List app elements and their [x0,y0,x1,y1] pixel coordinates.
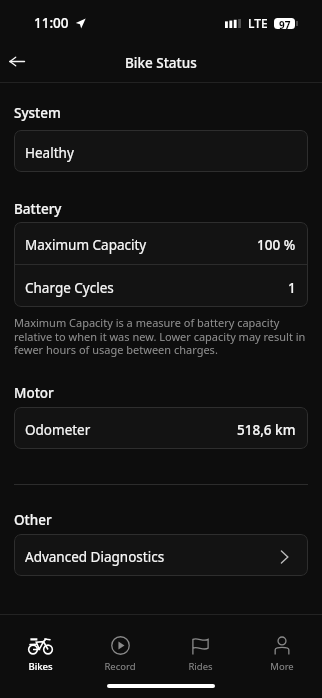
button[interactable]: Advanced Diagnostics [14,534,308,576]
button[interactable]: Odometer [14,407,308,449]
staticText: System [14,104,61,122]
staticText: Motor [14,384,54,402]
staticText: Battery [14,200,62,218]
staticText: 100 % [257,236,296,254]
staticText: Odometer [25,421,91,439]
button[interactable]: Bikes [0,615,80,673]
staticText: 518,6 km [237,421,296,439]
staticText: Rides [188,660,213,673]
button[interactable]: Healthy [14,130,308,172]
staticText: Other [14,511,52,529]
staticText: 1 [288,279,296,297]
staticText: Bikes [28,660,53,673]
staticText: Maximum Capacity [25,236,147,254]
button[interactable]: Back [0,44,34,78]
button[interactable]: More [241,615,322,673]
staticText: 97 [279,18,291,29]
staticText: Record [104,660,136,673]
staticText: Maximum Capacity is a measure of battery… [14,315,309,357]
button[interactable]: Charge Cycles [14,265,308,307]
staticText: Advanced Diagnostics [25,548,165,566]
staticText: Bike Status [125,54,197,72]
button[interactable]: Maximum Capacity [14,222,308,264]
staticText: LTE [248,15,268,31]
staticText: 11:00 [34,14,69,32]
button[interactable]: Record [80,615,160,673]
button[interactable]: Rides [160,615,241,673]
staticText: Charge Cycles [25,279,114,297]
staticText: Healthy [25,144,74,162]
staticText: More [270,660,294,673]
